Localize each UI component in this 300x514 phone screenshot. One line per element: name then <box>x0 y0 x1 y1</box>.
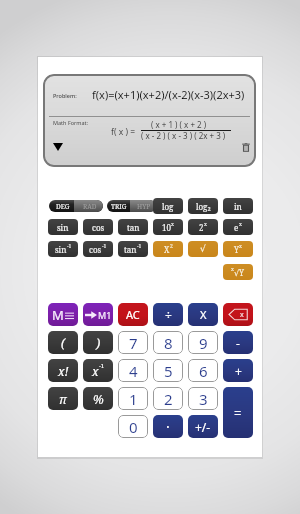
staticText: f( x ) = <box>111 126 136 138</box>
button[interactable]: Delete <box>237 138 254 156</box>
button[interactable]: 7 <box>118 331 148 354</box>
staticText: -1 <box>67 243 72 250</box>
button[interactable]: e <box>223 219 253 235</box>
button[interactable]: · <box>153 415 183 438</box>
button[interactable]: log₂ <box>188 198 218 214</box>
staticText: 6 <box>199 361 208 381</box>
staticText: ) <box>96 335 101 351</box>
button[interactable]: 9 <box>188 331 218 354</box>
staticText: - <box>236 335 240 351</box>
staticText: X <box>164 244 170 255</box>
staticText: % <box>93 391 104 407</box>
staticText: in <box>234 201 242 212</box>
staticText: 2 <box>199 222 204 233</box>
button[interactable]: ( <box>48 331 78 354</box>
staticText: x <box>171 221 174 228</box>
staticText: sin <box>57 222 69 233</box>
button[interactable]: √ <box>188 241 218 257</box>
button[interactable]: % <box>83 387 113 410</box>
staticText: x <box>204 221 207 228</box>
button[interactable]: cos <box>83 241 113 257</box>
staticText: √ <box>200 244 206 254</box>
button[interactable]: x! <box>48 359 78 382</box>
button[interactable]: 6 <box>188 359 218 382</box>
staticText: ( x + 1 ) ( x + 2 ) <box>151 119 207 130</box>
staticText: x <box>239 221 242 228</box>
staticText: 2 <box>164 389 173 409</box>
staticText: x <box>239 243 242 250</box>
button[interactable]: cos <box>83 219 113 235</box>
staticText: x <box>231 266 234 273</box>
staticText: sin <box>55 244 67 255</box>
button[interactable]: Store to memory 1 <box>83 303 113 326</box>
button[interactable]: Backspace <box>223 303 253 326</box>
button[interactable]: sin <box>48 241 78 257</box>
staticText: M1 <box>98 309 112 321</box>
button[interactable]: DEG <box>49 200 103 212</box>
staticText: -1 <box>137 243 142 250</box>
staticText: M <box>52 306 64 324</box>
staticText: 9 <box>199 333 208 353</box>
button[interactable]: tan <box>118 241 148 257</box>
staticText: √Y <box>234 267 245 278</box>
staticText: e <box>234 222 239 233</box>
staticText: Problem: <box>53 92 77 99</box>
button[interactable]: π <box>48 387 78 410</box>
staticText: log <box>162 201 174 212</box>
button[interactable]: 4 <box>118 359 148 382</box>
staticText: DEG <box>56 202 70 211</box>
staticText: +/- <box>195 419 211 435</box>
staticText: cos <box>92 222 105 233</box>
button[interactable]: +/- <box>188 415 218 438</box>
staticText: 10 <box>162 222 171 233</box>
button[interactable]: + <box>223 359 253 382</box>
staticText: x <box>92 363 99 379</box>
staticText: tan <box>124 244 137 255</box>
button[interactable]: 5 <box>153 359 183 382</box>
button[interactable]: Memory list <box>48 303 78 326</box>
button[interactable]: 0 <box>118 415 148 438</box>
staticText: x <box>240 310 244 320</box>
staticText: 8 <box>164 333 173 353</box>
staticText: 5 <box>164 361 173 381</box>
button[interactable]: 2 <box>153 387 183 410</box>
button[interactable]: Expand history <box>48 138 68 156</box>
button[interactable]: TRIG <box>107 200 156 212</box>
staticText: f(x)=(x+1)(x+2)/(x-2)(x-3)(2x+3) <box>92 87 245 102</box>
button[interactable]: Y <box>223 241 253 257</box>
button[interactable]: 10 <box>153 219 183 235</box>
button[interactable]: x <box>83 359 113 382</box>
button[interactable]: 1 <box>118 387 148 410</box>
button[interactable]: sin <box>48 219 78 235</box>
button[interactable]: - <box>223 331 253 354</box>
button[interactable]: ) <box>83 331 113 354</box>
staticText: 3 <box>199 389 208 409</box>
staticText: ÷ <box>165 307 172 323</box>
staticText: 2 <box>170 243 173 250</box>
button[interactable]: ÷ <box>153 303 183 326</box>
button[interactable]: log <box>153 198 183 214</box>
button[interactable]: 8 <box>153 331 183 354</box>
staticText: = <box>234 404 242 422</box>
staticText: 0 <box>129 417 138 437</box>
staticText: 7 <box>129 333 138 353</box>
button[interactable]: X <box>153 241 183 257</box>
button[interactable]: 2 <box>188 219 218 235</box>
staticText: π <box>59 391 67 407</box>
button[interactable]: tan <box>118 219 148 235</box>
button[interactable]: Problem: <box>43 74 256 167</box>
staticText: tan <box>127 222 140 233</box>
button[interactable]: = <box>223 387 253 438</box>
staticText: X <box>200 307 207 322</box>
staticText: cos <box>89 244 102 255</box>
button[interactable]: AC <box>118 303 148 326</box>
staticText: HYP <box>137 202 151 211</box>
staticText: ( x - 2 ) ( x - 3 ) ( 2x + 3 ) <box>141 130 226 141</box>
button[interactable]: in <box>223 198 253 214</box>
button[interactable]: x <box>223 264 253 280</box>
staticText: Y <box>234 244 239 255</box>
staticText: AC <box>126 307 140 322</box>
button[interactable]: 3 <box>188 387 218 410</box>
staticText: TRIG <box>111 202 127 211</box>
button[interactable]: X <box>188 303 218 326</box>
